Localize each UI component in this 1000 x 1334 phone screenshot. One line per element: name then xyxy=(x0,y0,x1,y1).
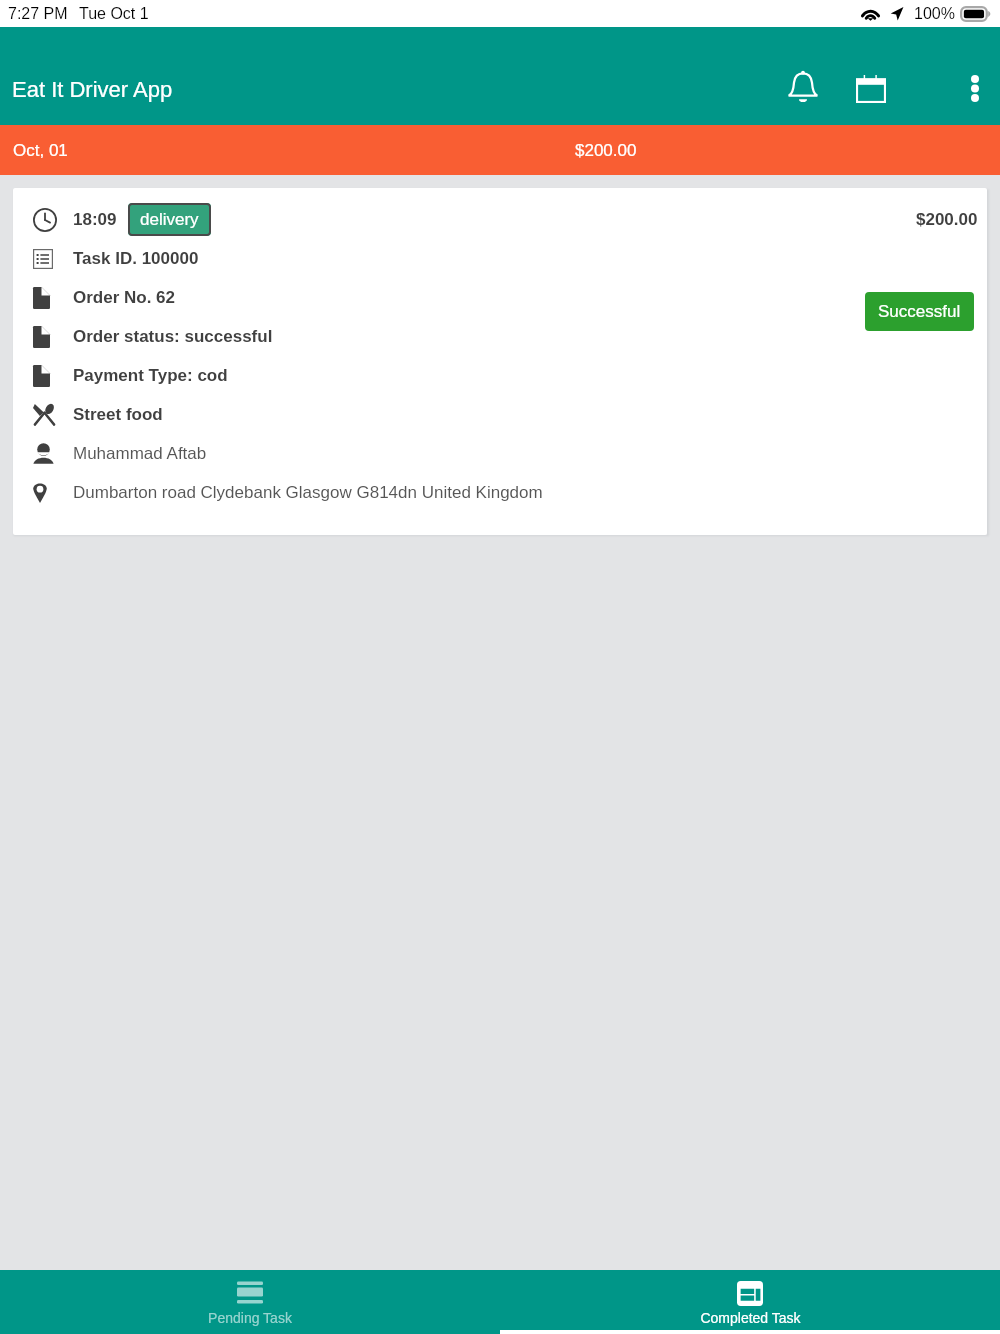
staticText: Task ID. 100000 xyxy=(73,249,199,268)
button[interactable]: More options xyxy=(951,64,999,112)
staticText: Eat It Driver App xyxy=(12,77,173,102)
staticText: 18:09 xyxy=(73,210,117,229)
button[interactable]: Calendar xyxy=(840,58,901,119)
staticText: $200.00 xyxy=(575,141,637,160)
staticText: Payment Type: cod xyxy=(73,366,228,385)
staticText: Dumbarton road Clydebank Glasgow G814dn … xyxy=(73,483,543,502)
staticText: Order No. 62 xyxy=(73,288,176,307)
staticText: 100% xyxy=(914,5,955,23)
button[interactable]: Pending Task xyxy=(0,1270,500,1330)
staticText: Oct, 01 xyxy=(13,141,68,160)
staticText: delivery xyxy=(140,210,199,229)
staticText: $200.00 xyxy=(916,210,978,229)
staticText: Street food xyxy=(73,405,163,424)
button[interactable]: delivery xyxy=(128,203,211,236)
staticText: 7:27 PM xyxy=(8,5,68,23)
button[interactable]: Successful xyxy=(865,292,974,331)
button[interactable]: 18:09 xyxy=(13,188,987,535)
staticText: Completed Task xyxy=(700,1310,801,1326)
staticText: Successful xyxy=(878,302,961,321)
staticText: Tue Oct 1 xyxy=(79,5,149,23)
button[interactable]: Completed Task xyxy=(500,1270,1000,1330)
button[interactable]: Notifications xyxy=(772,56,833,117)
staticText: Pending Task xyxy=(208,1310,292,1326)
staticText: Muhammad Aftab xyxy=(73,444,207,463)
staticText: Order status: successful xyxy=(73,327,273,346)
